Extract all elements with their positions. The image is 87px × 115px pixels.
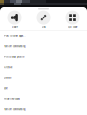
staticText: QR code <box>68 26 77 29</box>
button[interactable]: Edit <box>0 83 87 94</box>
button[interactable]: Turn off commenting <box>0 41 87 52</box>
button[interactable]: Share <box>0 11 29 29</box>
staticText: Turn off commenting <box>4 108 25 111</box>
staticText: Hide like count <box>4 98 20 100</box>
staticText: Post to other apps... <box>4 35 26 37</box>
button[interactable]: Pin to your profile <box>0 52 87 62</box>
staticText: Turn off commenting <box>4 45 25 48</box>
button[interactable]: QR code <box>58 11 87 29</box>
button[interactable]: Delete <box>0 73 87 83</box>
button[interactable]: Hide like count <box>0 94 87 104</box>
button[interactable]: Turn off commenting <box>0 104 87 115</box>
staticText: Delete <box>4 77 11 79</box>
staticText: Pin to your profile <box>4 56 24 58</box>
staticText: Archive <box>4 66 12 69</box>
staticText: Edit <box>4 87 8 90</box>
button[interactable]: Archive <box>0 62 87 73</box>
staticText: Link <box>41 26 45 29</box>
button[interactable]: Link <box>29 11 58 29</box>
staticText: Share <box>11 26 17 29</box>
button[interactable]: Post to other apps... <box>0 31 87 41</box>
